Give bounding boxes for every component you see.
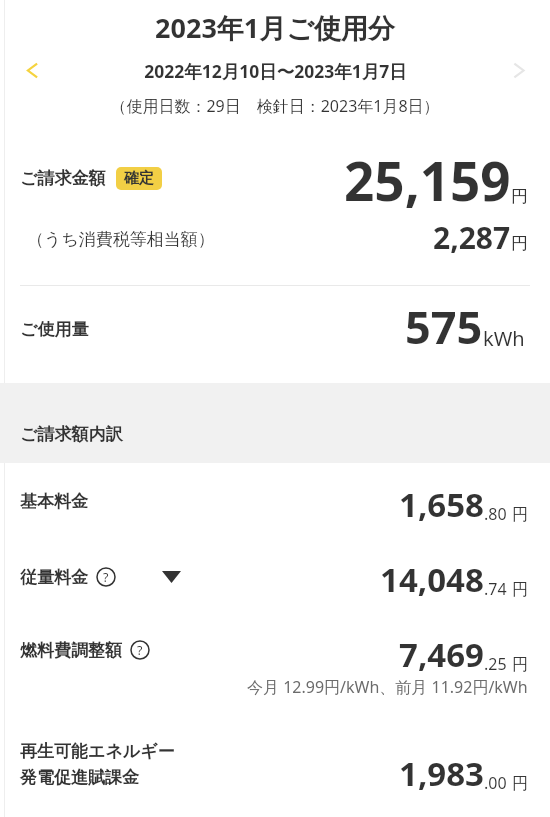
staticText: 燃料費調整額: [20, 640, 122, 661]
staticText: ?: [137, 642, 143, 659]
staticText: 円: [512, 505, 528, 525]
button[interactable]: 従量料金の明細を閉じる: [158, 564, 184, 590]
staticText: ご使用量: [20, 319, 89, 340]
button[interactable]: 従量料金の説明: [95, 566, 117, 588]
staticText: 1,658: [399, 482, 484, 527]
staticText: .25: [484, 653, 507, 675]
button[interactable]: 基本料金: [0, 463, 550, 538]
staticText: 2,287: [433, 217, 511, 258]
staticText: 今月 12.99円/kWh、前月 11.92円/kWh: [247, 676, 528, 698]
staticText: ご請求金額: [20, 168, 106, 189]
staticText: .74: [484, 578, 507, 600]
staticText: 25,159: [344, 144, 511, 216]
staticText: 発電促進賦課金: [20, 767, 139, 788]
button[interactable]: 再生可能エネルギー: [0, 713, 550, 808]
staticText: 575: [405, 296, 483, 357]
staticText: 円: [512, 580, 528, 600]
staticText: 円: [512, 655, 528, 675]
staticText: （うち消費税等相当額）: [27, 229, 215, 250]
staticText: 円: [511, 233, 528, 254]
staticText: 円: [512, 774, 528, 794]
staticText: 2022年12月10日〜2023年1月7日: [144, 59, 407, 83]
staticText: 基本料金: [20, 491, 88, 512]
staticText: ご請求額内訳: [20, 424, 123, 445]
staticText: .80: [484, 503, 507, 525]
staticText: .00: [484, 772, 507, 794]
staticText: 1,983: [399, 751, 484, 796]
staticText: kWh: [483, 325, 525, 352]
staticText: 従量料金: [20, 567, 88, 588]
button[interactable]: 次の月: [495, 47, 541, 93]
staticText: （使用日数：29日 検針日：2023年1月8日）: [110, 95, 440, 117]
staticText: 確定: [124, 169, 154, 188]
button[interactable]: 前の月: [9, 47, 55, 93]
staticText: 7,469: [399, 632, 484, 677]
button[interactable]: 燃料費調整額の説明: [129, 639, 151, 661]
staticText: ?: [103, 569, 109, 586]
button[interactable]: 確定: [116, 167, 162, 190]
staticText: 再生可能エネルギー: [20, 741, 175, 762]
staticText: 14,048: [380, 557, 484, 602]
staticText: 2023年1月ご使用分: [155, 9, 395, 46]
staticText: 円: [511, 186, 528, 207]
